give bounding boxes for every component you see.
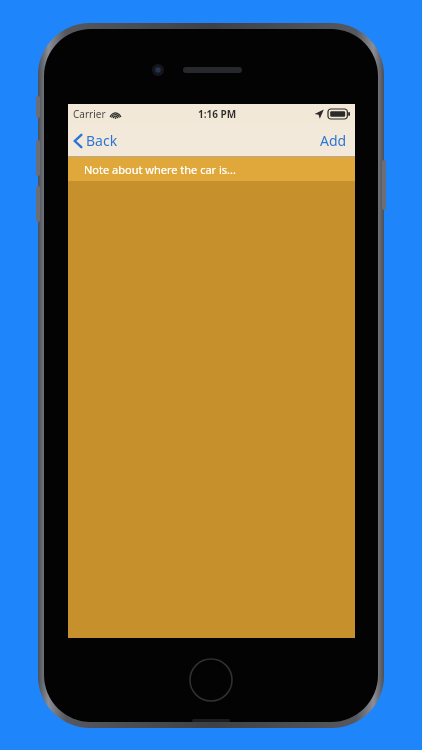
button[interactable]: Note about where the car is... bbox=[68, 157, 355, 181]
staticText: Carrier bbox=[73, 107, 106, 121]
button[interactable]: Back bbox=[68, 125, 128, 156]
staticText: Back bbox=[86, 131, 118, 150]
other: Home bbox=[189, 658, 233, 702]
staticText: 1:16 PM bbox=[198, 107, 237, 121]
staticText: Add bbox=[320, 131, 347, 150]
button[interactable]: Add bbox=[308, 125, 355, 156]
staticText: Note about where the car is... bbox=[84, 162, 236, 177]
